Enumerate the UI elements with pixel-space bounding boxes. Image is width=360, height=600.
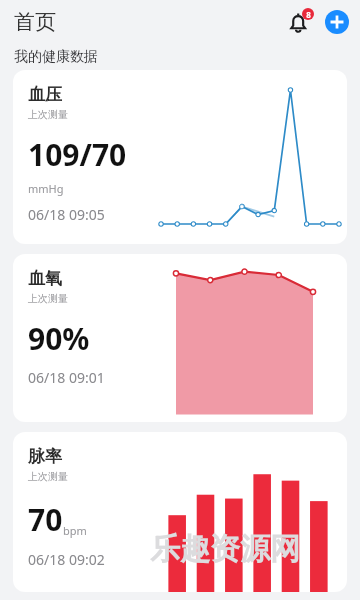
staticText: 90%: [28, 318, 90, 359]
staticText: 首页: [14, 9, 56, 35]
staticText: 109/70: [28, 134, 127, 175]
staticText: 血压: [28, 84, 62, 105]
staticText: 脉率: [28, 446, 62, 467]
staticText: 血氧: [28, 268, 62, 289]
staticText: 06/18 09:02: [28, 550, 105, 569]
staticText: 8: [306, 9, 311, 20]
staticText: 70: [28, 499, 63, 540]
staticText: bpm: [63, 523, 87, 538]
staticText: 我的健康数据: [14, 48, 98, 66]
staticText: mmHg: [28, 181, 64, 196]
staticText: 上次测量: [28, 108, 68, 121]
button[interactable]: Notifications: [285, 7, 315, 37]
staticText: 上次测量: [28, 292, 68, 305]
button[interactable]: 血氧: [13, 254, 347, 422]
staticText: 上次测量: [28, 470, 68, 483]
button[interactable]: 血压: [13, 70, 347, 244]
button[interactable]: Add: [325, 10, 349, 34]
staticText: 06/18 09:05: [28, 205, 105, 224]
staticText: 06/18 09:01: [28, 368, 105, 387]
button[interactable]: 脉率: [13, 432, 347, 592]
staticText: 乐趣资源网: [150, 530, 300, 568]
